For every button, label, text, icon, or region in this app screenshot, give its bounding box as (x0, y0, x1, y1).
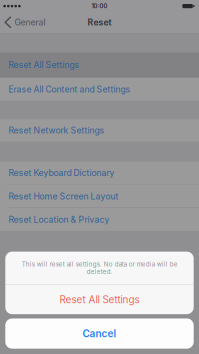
button[interactable]: Reset Keyboard Dictionary (0, 161, 199, 185)
staticText: Reset All Settings (59, 294, 139, 306)
staticText: Reset Home Screen Layout (8, 191, 118, 201)
staticText: Cancel (82, 328, 116, 340)
staticText: Reset (87, 17, 111, 27)
staticText: Reset Keyboard Dictionary (8, 168, 114, 178)
staticText: Reset All Settings (8, 60, 79, 70)
button[interactable]: Reset Location & Privacy (0, 208, 199, 231)
staticText: Erase All Content and Settings (8, 84, 130, 95)
staticText: Reset Network Settings (8, 125, 104, 136)
button[interactable]: Reset All Settings (0, 52, 199, 78)
staticText: Reset Location & Privacy (8, 214, 109, 225)
staticText: General (14, 17, 45, 27)
staticText: This will reset all settings. No data or… (21, 260, 177, 275)
button[interactable]: General (0, 13, 45, 32)
button[interactable]: Cancel (5, 318, 194, 349)
button[interactable]: Reset All Settings (5, 285, 194, 314)
staticText: 10:00 (91, 3, 107, 10)
button[interactable]: Erase All Content and Settings (0, 78, 199, 101)
button[interactable]: Reset Home Screen Layout (0, 185, 199, 208)
button[interactable]: Reset Network Settings (0, 119, 199, 142)
